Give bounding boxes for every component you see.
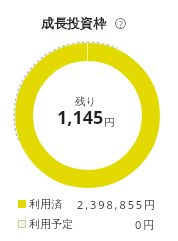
staticText: 0円 <box>135 217 157 231</box>
button[interactable]: ヘルプ <box>115 18 126 29</box>
button[interactable]: 利用済 <box>18 197 157 211</box>
staticText: 1,145 <box>57 105 104 130</box>
staticText: 2,398,855円 <box>77 197 157 211</box>
staticText: 残り <box>75 95 97 108</box>
staticText: 利用済 <box>29 197 62 211</box>
button[interactable]: 利用予定 <box>18 217 157 231</box>
staticText: 成長投資枠 <box>41 15 106 31</box>
staticText: ? <box>119 18 123 29</box>
staticText: 円 <box>104 116 115 129</box>
staticText: 利用予定 <box>29 217 73 231</box>
